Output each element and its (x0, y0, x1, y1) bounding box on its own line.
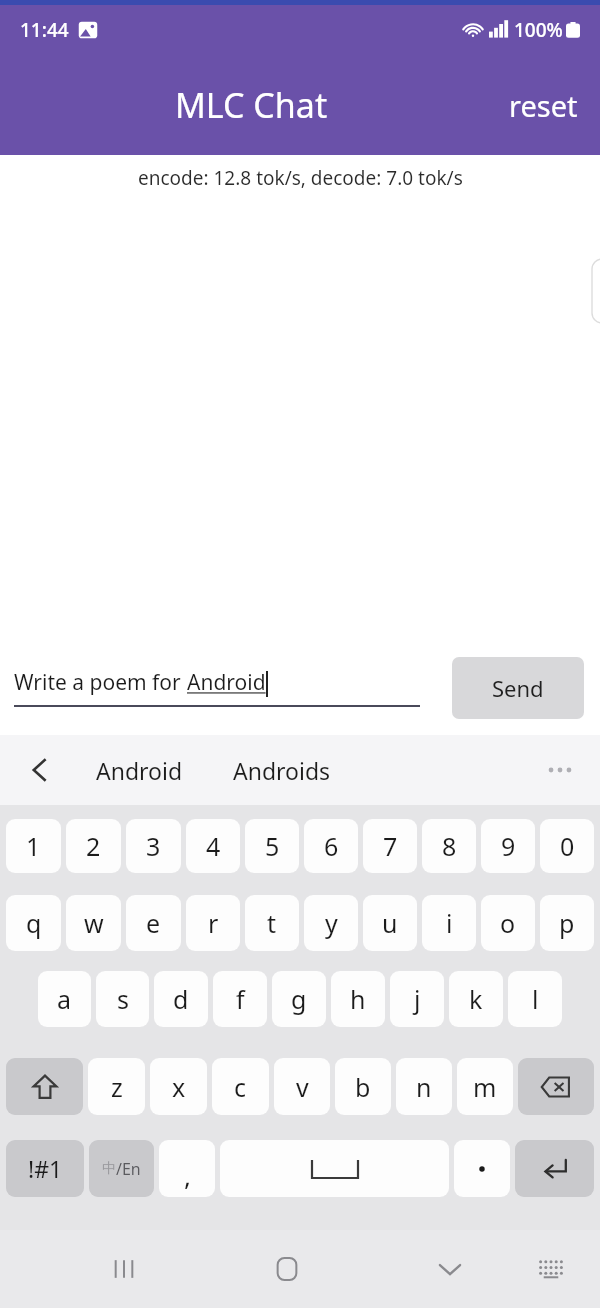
button[interactable]: Hide keyboard (422, 1241, 478, 1297)
button[interactable]: t (245, 895, 299, 951)
button[interactable]: 0 (540, 819, 594, 873)
button[interactable]: 8 (422, 819, 476, 873)
staticText: 2 (86, 829, 101, 863)
button[interactable]: n (396, 1058, 452, 1115)
button[interactable]: 6 (304, 819, 358, 873)
button[interactable]: l (508, 971, 562, 1027)
staticText: k (469, 982, 483, 1016)
button[interactable]: Send (452, 657, 584, 719)
button[interactable]: Home (259, 1241, 315, 1297)
button[interactable]: c (212, 1058, 269, 1115)
button[interactable]: q (6, 895, 61, 951)
staticText: l (532, 982, 539, 1016)
staticText: j (414, 982, 421, 1016)
button[interactable]: 1 (6, 819, 61, 873)
button[interactable]: Recents (96, 1241, 152, 1297)
staticText: x (172, 1070, 186, 1104)
staticText: 0 (560, 829, 575, 863)
button[interactable]: g (272, 971, 326, 1027)
staticText: g (291, 982, 307, 1016)
button[interactable]: Space (220, 1140, 449, 1197)
button[interactable]: x (150, 1058, 207, 1115)
button[interactable]: a (38, 971, 91, 1027)
button[interactable] (454, 1140, 510, 1197)
button[interactable]: 9 (481, 819, 535, 873)
button[interactable]: b (335, 1058, 391, 1115)
button[interactable]: 3 (126, 819, 181, 873)
button[interactable]: w (66, 895, 121, 951)
button[interactable]: z (88, 1058, 145, 1115)
staticText: c (234, 1070, 247, 1104)
staticText: z (111, 1070, 123, 1104)
staticText: a (57, 982, 72, 1016)
button[interactable]: Androids (223, 747, 341, 794)
button[interactable]: e (126, 895, 181, 951)
staticText: reset (509, 86, 578, 125)
staticText: f (236, 982, 245, 1016)
staticText: y (325, 906, 338, 940)
button[interactable]: h (331, 971, 385, 1027)
button[interactable]: i (422, 895, 476, 951)
button[interactable]: j (390, 971, 444, 1027)
staticText: w (84, 906, 104, 940)
staticText: s (117, 982, 129, 1016)
button[interactable]: Backspace (518, 1058, 594, 1115)
button[interactable]: o (481, 895, 535, 951)
button[interactable]: v (274, 1058, 330, 1115)
staticText: 3 (146, 829, 161, 863)
button[interactable]: Enter (515, 1140, 594, 1197)
staticText: MLC Chat (175, 82, 328, 128)
staticText: 6 (324, 829, 339, 863)
staticText: n (416, 1070, 432, 1104)
button[interactable]: f (213, 971, 267, 1027)
button[interactable]: More options (540, 750, 580, 790)
button[interactable]: Switch keyboard (526, 1244, 576, 1294)
staticText: t (267, 906, 277, 940)
staticText: Android (187, 668, 266, 697)
staticText: p (559, 906, 575, 940)
staticText: !#1 (28, 1153, 63, 1184)
staticText: m (473, 1070, 497, 1104)
button[interactable]: Write a poem for (14, 668, 420, 707)
button[interactable]: m (457, 1058, 513, 1115)
staticText: r (208, 906, 219, 940)
staticText: /En (116, 1158, 141, 1180)
button[interactable]: !#1 (6, 1140, 84, 1197)
button[interactable]: 7 (363, 819, 417, 873)
button[interactable]: y (304, 895, 358, 951)
staticText: 4 (206, 829, 221, 863)
button[interactable]: 2 (66, 819, 121, 873)
staticText: i (446, 906, 453, 940)
staticText: e (146, 906, 161, 940)
staticText: Write a poem for (14, 668, 187, 697)
staticText: 100% (514, 17, 563, 43)
staticText: d (173, 982, 189, 1016)
staticText: h (350, 982, 366, 1016)
button[interactable]: 5 (245, 819, 299, 873)
staticText: 7 (383, 829, 398, 863)
staticText: q (26, 906, 42, 940)
button[interactable]: 4 (186, 819, 240, 873)
button[interactable]: Back (18, 748, 62, 792)
button[interactable]: u (363, 895, 417, 951)
button[interactable]: reset (503, 86, 600, 125)
staticText: o (500, 906, 516, 940)
staticText: Send (492, 673, 544, 703)
button[interactable]: Android (86, 747, 193, 794)
staticText: v (296, 1070, 309, 1104)
button[interactable]: Language (89, 1140, 154, 1197)
button[interactable]: k (449, 971, 503, 1027)
staticText: , (184, 1158, 191, 1193)
button[interactable]: s (96, 971, 149, 1027)
staticText: encode: 12.8 tok/s, decode: 7.0 tok/s (138, 165, 463, 191)
staticText: 中 (102, 1160, 116, 1178)
button[interactable]: , (159, 1140, 215, 1197)
staticText: Android (96, 755, 183, 786)
button[interactable]: Shift (6, 1058, 83, 1115)
staticText: Androids (233, 755, 331, 786)
button[interactable]: d (154, 971, 208, 1027)
button[interactable]: r (186, 895, 240, 951)
staticText: 5 (265, 829, 280, 863)
button[interactable]: p (540, 895, 594, 951)
staticText: u (382, 906, 398, 940)
